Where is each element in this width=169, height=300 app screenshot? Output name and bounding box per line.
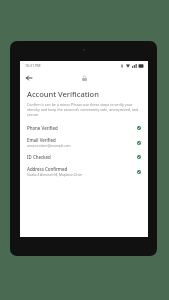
button[interactable]: ID Checked — [20, 151, 148, 163]
staticText: 10:31 PM — [25, 63, 41, 68]
staticText: Account Verification — [27, 89, 99, 99]
staticText: Address Confirmed — [27, 166, 68, 172]
button[interactable]: Address Confirmed — [20, 163, 148, 180]
button[interactable]: Phone Verified — [20, 122, 148, 134]
button[interactable]: Security — [78, 72, 90, 84]
button[interactable]: Back — [23, 72, 35, 84]
staticText: ID Checked — [27, 154, 51, 160]
button[interactable]: Email Verified — [20, 134, 148, 151]
staticText: Studio 4 Almond Hill, Mapleton Drive — [27, 173, 83, 177]
staticText: Phone Verified — [27, 125, 58, 131]
staticText: Confirm it can be a minor. Please use th… — [27, 102, 141, 117]
staticText: anna.resident@example.com — [27, 144, 71, 148]
staticText: Email Verified — [27, 137, 56, 143]
